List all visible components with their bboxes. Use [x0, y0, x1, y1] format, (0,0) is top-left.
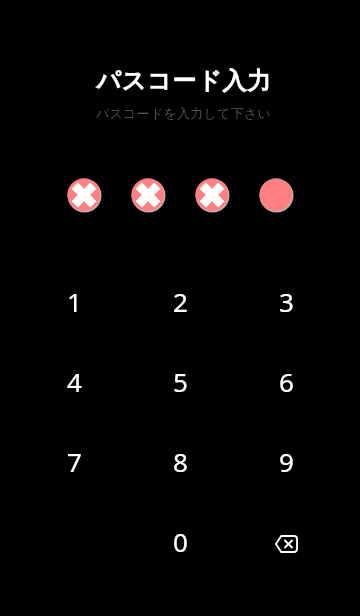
staticText: パスコード入力	[96, 66, 272, 96]
staticText: 7	[67, 444, 82, 479]
staticText: 6	[279, 364, 294, 399]
button[interactable]: 6	[233, 341, 339, 421]
staticText: 4	[67, 364, 82, 399]
button[interactable]: 2	[127, 261, 233, 341]
staticText: 3	[279, 284, 294, 319]
staticText: 1	[67, 284, 82, 319]
button[interactable]: 8	[127, 421, 233, 501]
staticText: 8	[173, 444, 188, 479]
button[interactable]: Delete	[233, 501, 339, 581]
button[interactable]: 3	[233, 261, 339, 341]
staticText: 2	[173, 284, 188, 319]
button[interactable]: 4	[22, 341, 127, 421]
button[interactable]: 0	[127, 501, 233, 581]
button[interactable]: 5	[127, 341, 233, 421]
staticText: 9	[279, 444, 294, 479]
button[interactable]: 9	[233, 421, 339, 501]
staticText: パスコードを入力して下さい	[96, 105, 271, 121]
staticText: 5	[173, 364, 188, 399]
button[interactable]: 1	[22, 261, 127, 341]
button[interactable]: 7	[22, 421, 127, 501]
staticText: 0	[173, 524, 188, 559]
